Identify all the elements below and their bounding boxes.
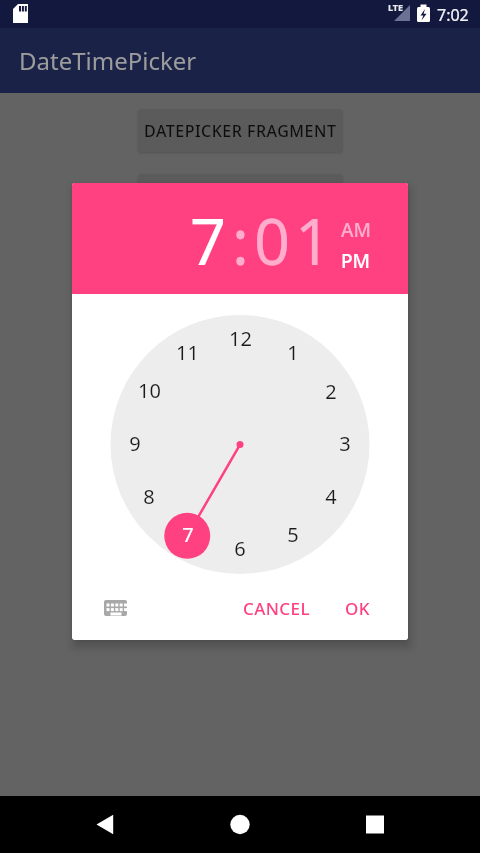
staticText: 12 <box>229 325 252 352</box>
staticText: OK <box>345 597 370 620</box>
button[interactable]: PM <box>341 248 371 274</box>
button[interactable]: OK <box>337 590 378 627</box>
staticText: 1 <box>287 339 299 366</box>
staticText: 8 <box>143 483 155 510</box>
button[interactable]: 1 <box>273 332 313 372</box>
staticText: 7 <box>182 521 194 548</box>
staticText: 6 <box>234 535 246 562</box>
button[interactable]: 2 <box>311 371 351 411</box>
staticText: LTE <box>388 1 404 13</box>
staticText: :01 <box>232 198 336 284</box>
button[interactable]: 9 <box>115 423 155 463</box>
button[interactable]: CANCEL <box>235 590 318 627</box>
button[interactable]: DATEPICKER FRAGMENT <box>138 109 342 152</box>
staticText: AM <box>341 217 371 243</box>
staticText: PM <box>341 248 371 274</box>
button[interactable]: 8 <box>129 476 169 516</box>
staticText: 2 <box>325 378 337 405</box>
button[interactable]: 11 <box>167 332 207 372</box>
staticText: DateTimePicker <box>19 44 197 77</box>
staticText: 11 <box>176 339 199 366</box>
button[interactable]: TIMEPICKER FRAGMENT <box>138 174 342 217</box>
staticText: CANCEL <box>243 597 310 620</box>
button[interactable]: Switch to keyboard input <box>96 589 134 627</box>
staticText: 7:02 <box>437 4 469 26</box>
button[interactable]: 7 <box>190 198 336 284</box>
button[interactable]: 6 <box>220 528 260 568</box>
button[interactable]: 7 <box>168 514 208 554</box>
button[interactable]: 5 <box>273 514 313 554</box>
button[interactable]: 10 <box>129 370 169 410</box>
staticText: 4 <box>325 483 337 510</box>
button[interactable]: 4 <box>311 476 351 516</box>
staticText: 10 <box>138 377 161 404</box>
staticText: 9 <box>129 430 141 457</box>
button[interactable]: 3 <box>325 423 365 463</box>
staticText: DATEPICKER FRAGMENT <box>144 120 337 142</box>
button[interactable]: 12 <box>220 318 260 358</box>
staticText: 7 <box>190 198 232 284</box>
staticText: 5 <box>287 521 299 548</box>
staticText: 3 <box>339 430 351 457</box>
button[interactable]: AM <box>341 217 371 243</box>
